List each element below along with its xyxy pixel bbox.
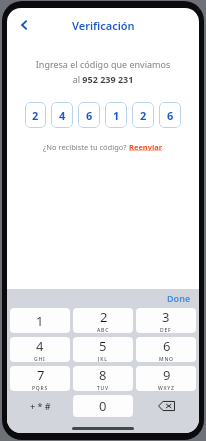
button[interactable]: 0 <box>73 395 133 417</box>
staticText: + * # <box>30 400 51 412</box>
staticText: PQRS <box>32 385 49 391</box>
staticText: 1 <box>113 108 120 123</box>
button[interactable]: 4 <box>51 102 73 128</box>
staticText: 6 <box>86 108 93 123</box>
staticText: DEF <box>160 327 172 333</box>
button[interactable]: 1 <box>105 102 127 128</box>
staticText: 6 <box>163 337 171 355</box>
staticText: 2 <box>100 308 108 326</box>
button[interactable]: 2 <box>25 102 46 128</box>
staticText: 4 <box>59 108 66 123</box>
button[interactable]: 2 <box>132 102 154 128</box>
button[interactable]: 6 <box>78 102 100 128</box>
staticText: MNO <box>159 356 174 362</box>
staticText: ¿No recibiste tu código? <box>43 142 129 152</box>
button[interactable]: 3 <box>136 308 196 333</box>
staticText: 9 <box>163 366 171 384</box>
staticText: 3 <box>162 308 170 326</box>
button[interactable]: Done <box>167 292 191 304</box>
staticText: 6 <box>167 108 174 123</box>
staticText: Reenviar <box>129 142 163 152</box>
button[interactable]: Symbols <box>10 395 70 417</box>
staticText: Ingresa el código que enviamos <box>7 58 199 70</box>
staticText: Verificación <box>72 18 135 33</box>
staticText: 1 <box>36 312 44 330</box>
button[interactable]: Reenviar <box>129 142 163 152</box>
staticText: GHI <box>34 356 46 362</box>
staticText: 5 <box>99 337 107 355</box>
button[interactable]: 1 <box>10 308 70 333</box>
button[interactable]: 4 <box>10 337 70 362</box>
staticText: TUV <box>97 385 109 391</box>
staticText: 2 <box>140 108 147 123</box>
button[interactable]: 2 <box>73 308 133 333</box>
button[interactable]: 9 <box>136 366 196 391</box>
button[interactable]: 7 <box>10 366 70 391</box>
staticText: JKL <box>98 356 108 362</box>
staticText: WXYZ <box>158 385 175 391</box>
staticText: Done <box>167 292 191 304</box>
staticText: 0 <box>99 397 107 415</box>
staticText: al 952 239 231 <box>7 73 199 85</box>
staticText: 4 <box>36 337 44 355</box>
staticText: ABC <box>97 327 110 333</box>
button[interactable]: 8 <box>73 366 133 391</box>
button[interactable]: 6 <box>159 102 181 128</box>
button[interactable]: 5 <box>73 337 133 362</box>
staticText: 8 <box>99 366 107 384</box>
button[interactable]: 6 <box>136 337 196 362</box>
button[interactable]: Back <box>11 12 37 38</box>
staticText: 7 <box>37 366 45 384</box>
staticText: 2 <box>32 108 39 123</box>
button[interactable]: Backspace <box>136 395 196 417</box>
